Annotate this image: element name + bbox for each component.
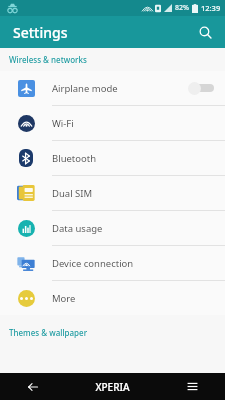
staticText: Airplane mode xyxy=(52,82,118,95)
button[interactable]: Recent apps xyxy=(159,373,225,400)
button[interactable]: Airplane mode xyxy=(0,71,225,105)
button[interactable]: Dual SIM xyxy=(0,176,225,210)
staticText: Bluetooth xyxy=(52,152,97,165)
button[interactable]: Device connection xyxy=(0,246,225,280)
button[interactable]: Search xyxy=(193,20,217,44)
staticText: More xyxy=(52,292,76,305)
staticText: Wi-Fi xyxy=(52,117,74,130)
button[interactable]: Airplane mode toggle xyxy=(188,79,214,97)
button[interactable]: Wi-Fi xyxy=(0,106,225,140)
staticText: 12:39 xyxy=(201,3,221,13)
button[interactable]: XPERIA xyxy=(66,373,159,400)
button[interactable]: Back xyxy=(0,373,66,400)
staticText: Device connection xyxy=(52,257,134,270)
staticText: XPERIA xyxy=(95,380,130,394)
button[interactable]: More xyxy=(0,281,225,315)
staticText: 82% xyxy=(175,3,189,13)
staticText: Themes & wallpaper xyxy=(9,327,88,338)
button[interactable]: Data usage xyxy=(0,211,225,245)
button[interactable]: Bluetooth xyxy=(0,141,225,175)
staticText: Data usage xyxy=(52,222,103,235)
staticText: Settings xyxy=(13,23,68,42)
staticText: Dual SIM xyxy=(52,187,93,200)
staticText: Wireless & networks xyxy=(9,54,87,65)
